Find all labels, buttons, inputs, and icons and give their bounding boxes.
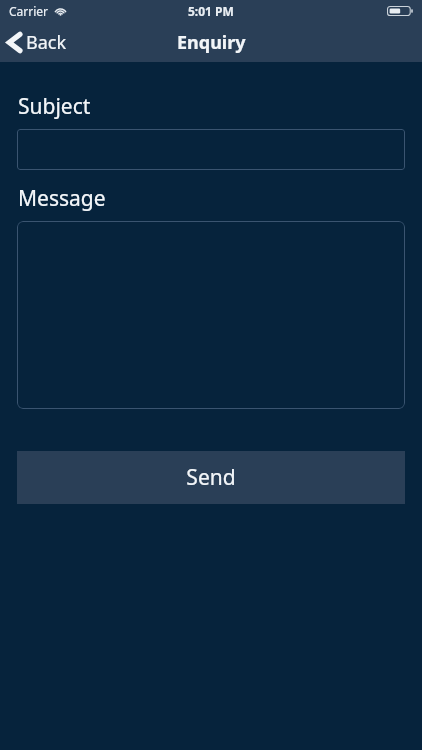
button[interactable] (17, 221, 405, 409)
staticText: Carrier (9, 3, 49, 19)
staticText: Message (18, 184, 106, 213)
button[interactable]: Back (0, 22, 77, 62)
staticText: Send (186, 463, 236, 492)
staticText: 5:01 PM (188, 3, 234, 19)
staticText: Subject (18, 92, 91, 121)
button[interactable] (17, 129, 405, 170)
staticText: Enquiry (177, 30, 246, 55)
staticText: Back (26, 30, 67, 55)
button[interactable]: Send (17, 451, 405, 504)
